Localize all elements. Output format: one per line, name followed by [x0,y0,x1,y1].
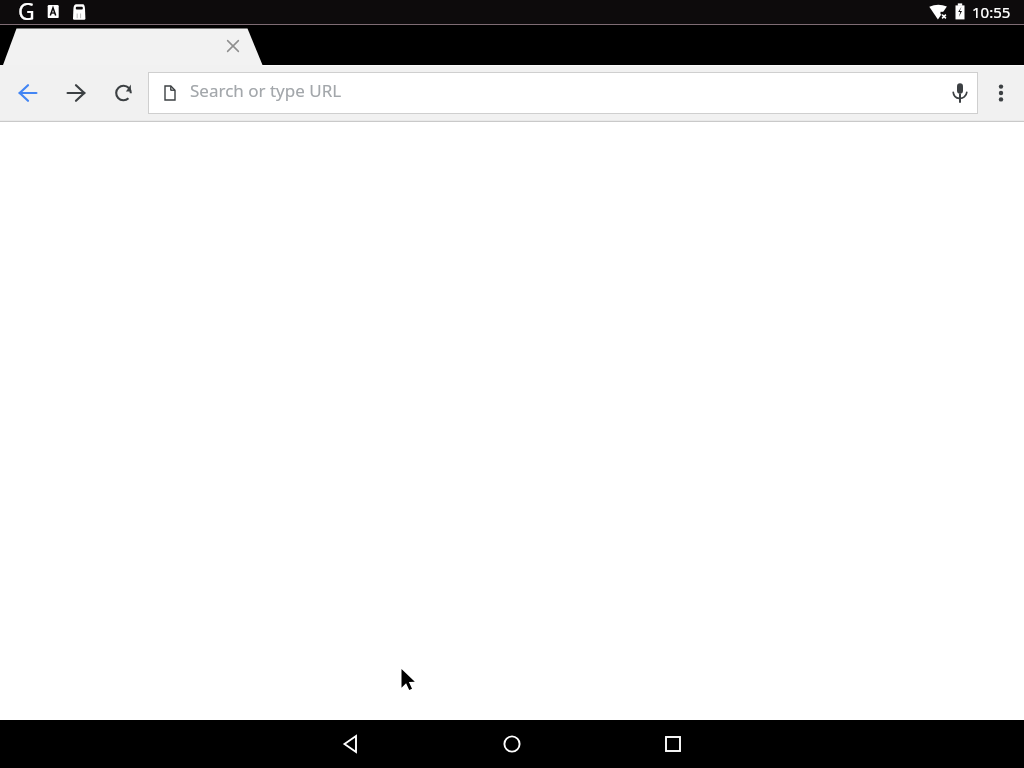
button[interactable]: Home [488,720,536,768]
staticText: G [18,0,35,20]
button[interactable]: Close tab [221,34,245,58]
button[interactable]: Back [326,720,374,768]
button[interactable]: Forward [56,69,96,117]
button[interactable]: Customise and control Chrome [981,69,1021,117]
button[interactable]: New tab [8,28,216,65]
staticText: Search or type URL [190,79,342,102]
button[interactable]: Reload this page [104,69,144,117]
button[interactable]: Search or type URL [149,73,977,113]
button[interactable]: Back [8,69,48,117]
button[interactable]: Recent apps [649,720,697,768]
staticText: 10:55 [972,2,1011,22]
button[interactable]: Search by voice [940,73,980,113]
